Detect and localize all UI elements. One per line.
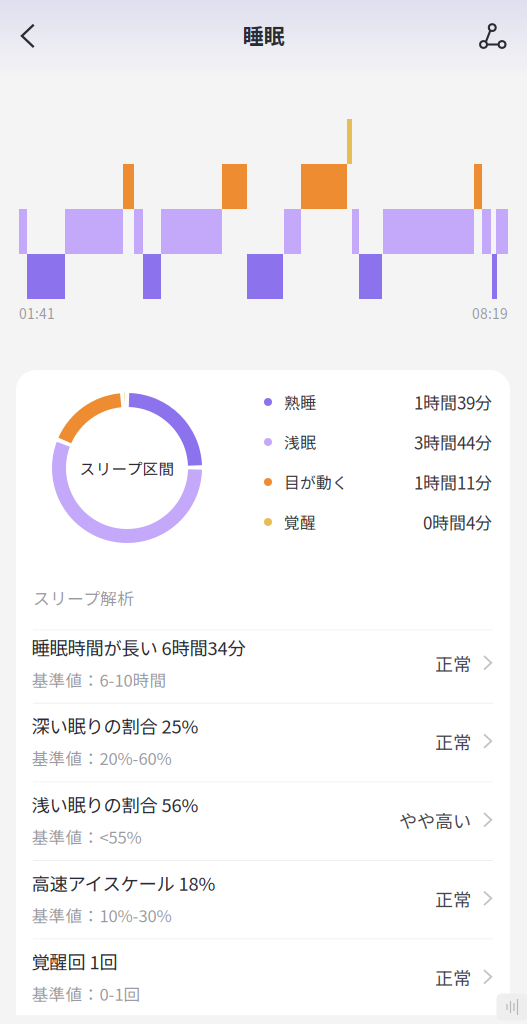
staticText: スリープ解析 bbox=[33, 586, 134, 610]
staticText: スリープ区間 bbox=[79, 457, 174, 479]
staticText: 3時間44分 bbox=[414, 430, 492, 454]
button[interactable]: 浅い眠りの割合 56% bbox=[16, 782, 510, 860]
staticText: 浅眠 bbox=[284, 431, 316, 453]
staticText: 覚醒 bbox=[284, 511, 316, 533]
staticText: 0時間4分 bbox=[423, 510, 492, 534]
staticText: 睡眠 bbox=[242, 20, 284, 50]
button[interactable]: Back bbox=[4, 14, 52, 58]
button[interactable]: 覚醒回 1回 bbox=[16, 939, 510, 1015]
staticText: 08:19 bbox=[472, 303, 508, 323]
staticText: 正常 bbox=[435, 964, 471, 990]
staticText: 基準値：20%-60% bbox=[32, 746, 172, 770]
staticText: 基準値：10%-30% bbox=[32, 903, 172, 927]
staticText: 基準値：0-1回 bbox=[32, 981, 141, 1005]
staticText: 正常 bbox=[435, 885, 471, 912]
staticText: 目が動く bbox=[284, 471, 348, 493]
button[interactable]: 高速アイスケール 18% bbox=[16, 861, 510, 938]
button[interactable]: Share bbox=[471, 14, 515, 58]
staticText: 熟睡 bbox=[284, 391, 316, 413]
staticText: 覚醒回 1回 bbox=[32, 948, 118, 974]
button[interactable]: 睡眠時間が長い 6時間34分 bbox=[16, 630, 510, 703]
staticText: 基準値：<55% bbox=[32, 824, 142, 848]
staticText: 深い眠りの割合 25% bbox=[32, 712, 199, 739]
staticText: 正常 bbox=[435, 650, 471, 676]
staticText: 1時間11分 bbox=[414, 470, 492, 494]
staticText: 基準値：6-10時間 bbox=[32, 667, 167, 691]
button[interactable]: 深い眠りの割合 25% bbox=[16, 704, 510, 781]
staticText: 正常 bbox=[435, 728, 471, 754]
staticText: 1時間39分 bbox=[414, 390, 492, 414]
staticText: 睡眠時間が長い 6時間34分 bbox=[32, 634, 246, 660]
staticText: やや高い bbox=[399, 807, 471, 833]
staticText: 浅い眠りの割合 56% bbox=[32, 791, 199, 817]
staticText: 高速アイスケール 18% bbox=[32, 869, 216, 896]
staticText: 01:41 bbox=[19, 303, 55, 323]
